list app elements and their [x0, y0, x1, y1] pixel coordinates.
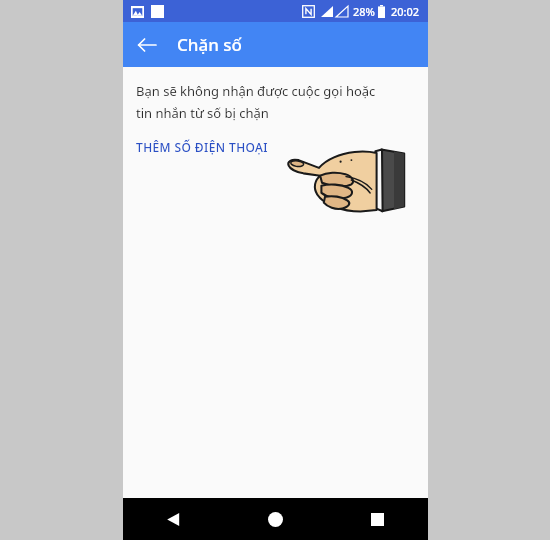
staticText: 20:02 — [391, 4, 420, 19]
button[interactable]: Back — [129, 27, 165, 63]
button[interactable]: Back — [123, 498, 224, 540]
staticText: Bạn sẽ không nhận được cuộc gọi hoặc tin… — [136, 82, 394, 122]
staticText: Chặn số — [177, 33, 242, 56]
button[interactable]: Home — [224, 498, 326, 540]
staticText: THÊM SỐ ĐIỆN THOẠI — [136, 139, 269, 155]
button[interactable]: THÊM SỐ ĐIỆN THOẠI — [136, 139, 269, 155]
staticText: 28% — [353, 4, 375, 19]
button[interactable]: Recent apps — [326, 498, 428, 540]
